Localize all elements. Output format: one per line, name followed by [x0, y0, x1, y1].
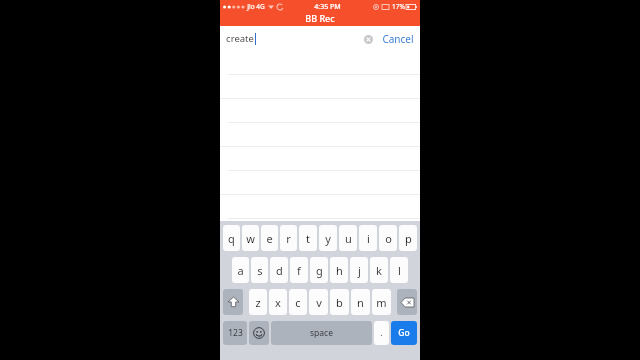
- button[interactable]: h: [330, 257, 348, 283]
- button[interactable]: c: [289, 289, 307, 315]
- staticText: create: [226, 32, 254, 45]
- button[interactable]: x: [269, 289, 287, 315]
- button[interactable]: e: [261, 225, 278, 251]
- staticText: a: [237, 263, 244, 278]
- staticText: 17%: [392, 2, 405, 11]
- staticText: m: [376, 295, 387, 310]
- staticText: y: [325, 231, 331, 246]
- button[interactable]: y: [319, 225, 337, 251]
- staticText: BB Rec: [305, 12, 335, 24]
- button[interactable]: m: [372, 289, 391, 315]
- staticText: .: [380, 327, 383, 339]
- button[interactable]: z: [249, 289, 267, 315]
- staticText: x: [275, 295, 281, 310]
- staticText: space: [310, 327, 333, 339]
- staticText: 123: [228, 327, 243, 339]
- button[interactable]: Go: [391, 321, 417, 345]
- staticText: f: [297, 263, 301, 278]
- button[interactable]: j: [350, 257, 368, 283]
- button[interactable]: k: [370, 257, 388, 283]
- button[interactable]: o: [379, 225, 397, 251]
- button[interactable]: Cancel: [380, 29, 416, 49]
- button[interactable]: r: [280, 225, 297, 251]
- button[interactable]: d: [270, 257, 288, 283]
- staticText: 4:35 PM: [314, 2, 341, 12]
- button[interactable]: u: [339, 225, 357, 251]
- staticText: s: [257, 263, 263, 278]
- button[interactable]: w: [242, 225, 259, 251]
- button[interactable]: l: [390, 257, 408, 283]
- button[interactable]: [249, 321, 269, 345]
- button[interactable]: f: [290, 257, 308, 283]
- staticText: z: [255, 295, 261, 310]
- staticText: Jio 4G: [247, 2, 265, 11]
- staticText: c: [295, 295, 301, 310]
- staticText: q: [228, 231, 235, 246]
- staticText: v: [316, 295, 322, 310]
- staticText: l: [398, 263, 401, 278]
- button[interactable]: [223, 289, 243, 315]
- staticText: d: [276, 263, 283, 278]
- staticText: o: [385, 231, 392, 246]
- staticText: j: [358, 263, 361, 278]
- button[interactable]: Clear text: [360, 31, 376, 47]
- staticText: b: [336, 295, 343, 310]
- button[interactable]: a: [232, 257, 249, 283]
- staticText: k: [376, 263, 382, 278]
- staticText: e: [266, 231, 273, 246]
- staticText: Go: [398, 327, 410, 339]
- button[interactable]: 123: [223, 321, 247, 345]
- staticText: w: [246, 231, 255, 246]
- staticText: n: [357, 295, 364, 310]
- staticText: h: [336, 263, 343, 278]
- button[interactable]: g: [310, 257, 328, 283]
- staticText: Cancel: [382, 32, 414, 46]
- button[interactable]: b: [330, 289, 349, 315]
- staticText: u: [345, 231, 352, 246]
- button[interactable]: v: [309, 289, 328, 315]
- button[interactable]: space: [271, 321, 372, 345]
- button[interactable]: .: [374, 321, 389, 345]
- staticText: t: [306, 231, 310, 246]
- button[interactable]: i: [359, 225, 377, 251]
- button[interactable]: [397, 289, 417, 315]
- button[interactable]: q: [223, 225, 240, 251]
- button[interactable]: t: [299, 225, 317, 251]
- staticText: r: [286, 231, 291, 246]
- button[interactable]: s: [251, 257, 268, 283]
- button[interactable]: p: [399, 225, 417, 251]
- staticText: p: [405, 231, 412, 246]
- staticText: g: [316, 263, 323, 278]
- button[interactable]: n: [351, 289, 370, 315]
- staticText: i: [367, 231, 370, 246]
